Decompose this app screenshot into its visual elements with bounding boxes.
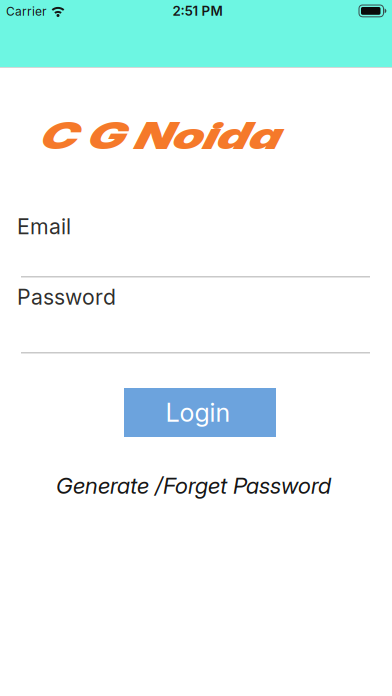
staticText: 2:51 PM <box>172 3 222 19</box>
staticText: Generate /Forget Password <box>56 472 331 499</box>
staticText: Login <box>165 398 230 427</box>
button[interactable]: Generate /Forget Password <box>0 470 389 500</box>
staticText: Email <box>17 214 71 239</box>
staticText: Carrier <box>6 4 47 18</box>
staticText: C G Noida <box>40 114 213 158</box>
textField[interactable]: Password <box>17 284 367 310</box>
staticText: Password <box>17 284 116 310</box>
button[interactable]: Login <box>124 388 276 437</box>
textField[interactable]: Email <box>17 214 367 239</box>
